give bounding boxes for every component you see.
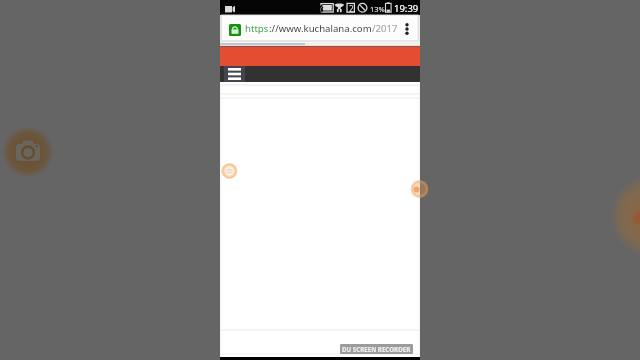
button[interactable]: Screen recorder [4,128,52,176]
staticText: https [245,22,269,35]
staticText: 19:39 [394,2,419,15]
button[interactable]: Menu [224,66,245,82]
staticText: 13% [370,4,385,14]
button[interactable]: More options [400,15,414,42]
button[interactable]: Recorder shutter [221,164,237,180]
button[interactable]: Recorder controls [410,181,426,197]
staticText: ://www.kuchalana.com [269,22,372,35]
other: Secure connection [229,24,241,36]
staticText: 2 [349,3,354,14]
button[interactable]: Search or type web address [220,15,400,42]
staticText: DU SCREEN RECORDER [342,345,411,353]
staticText: /2017 [372,22,398,35]
